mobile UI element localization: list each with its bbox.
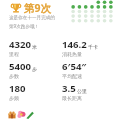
staticText: 最长距离 xyxy=(62,95,82,101)
staticText: 公里 xyxy=(77,88,87,94)
staticText: 第9次 xyxy=(24,1,52,15)
staticText: 146.2 xyxy=(62,38,87,51)
staticText: 千卡 xyxy=(88,44,98,50)
staticText: 步数 xyxy=(9,73,19,79)
staticText: 3.5 xyxy=(62,82,76,95)
staticText: 5400 xyxy=(9,60,31,73)
staticText: 步频 xyxy=(9,95,19,101)
staticText: 米 xyxy=(32,44,37,50)
staticText: 步 xyxy=(32,66,37,72)
staticText: 第9次跑步哦！ xyxy=(9,23,40,29)
staticText: 里程 xyxy=(9,51,19,57)
staticText: 这是你在十一月完成的 xyxy=(9,15,55,21)
button[interactable]: Reactions xyxy=(8,110,34,119)
other: Monthly activity calendar xyxy=(70,0,114,23)
staticText: 6′54″ xyxy=(62,60,87,73)
staticText: 4320 xyxy=(9,38,31,51)
staticText: 消耗热量 xyxy=(62,51,82,57)
staticText: 平均配速 xyxy=(62,73,82,79)
staticText: 180 xyxy=(9,82,26,95)
